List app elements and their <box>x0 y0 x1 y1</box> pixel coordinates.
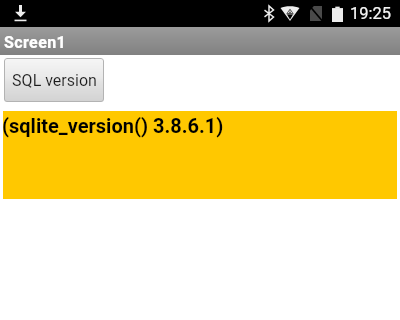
button[interactable]: SQL version <box>4 58 104 102</box>
other: Download <box>14 5 27 22</box>
staticText: (sqlite_version() 3.8.6.1) <box>2 114 224 137</box>
staticText: Screen1 <box>4 33 67 52</box>
staticText: 19:25 <box>350 4 392 23</box>
staticText: SQL version <box>12 71 97 90</box>
